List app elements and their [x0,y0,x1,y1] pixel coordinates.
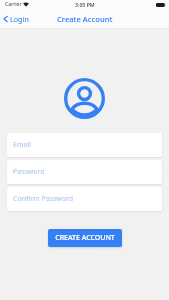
button[interactable]: CREATE ACCOUNT [48,229,122,247]
staticText: Confirm Password [13,194,74,204]
staticText: 3:05 PM [75,1,95,8]
button[interactable]: Back to Login [0,12,35,26]
staticText: CREATE ACCOUNT [55,233,115,243]
button[interactable]: Email [7,133,162,157]
staticText: Create Account [57,14,113,24]
staticText: Carrier [5,1,22,8]
button[interactable]: Choose profile photo [64,78,105,119]
staticText: Login [10,14,29,24]
staticText: Password [13,167,45,177]
button[interactable]: Confirm Password [7,187,162,211]
staticText: Email [13,140,31,150]
button[interactable]: Password [7,160,162,184]
